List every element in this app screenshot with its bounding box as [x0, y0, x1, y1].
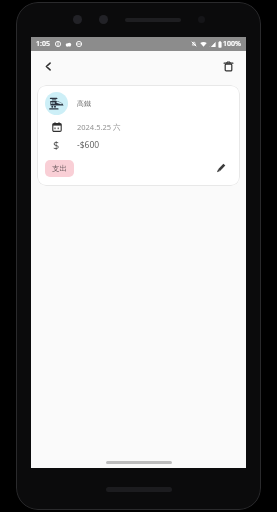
button[interactable]: Delete: [215, 53, 241, 79]
staticText: 100%: [223, 39, 241, 49]
staticText: 支出: [52, 164, 67, 173]
staticText: 2024.5.25 六: [77, 122, 121, 132]
button[interactable]: 高鐵: [37, 85, 240, 186]
staticText: 1:05: [36, 39, 50, 49]
button[interactable]: 支出: [45, 160, 74, 177]
button[interactable]: Edit: [210, 157, 232, 179]
staticText: 高鐵: [77, 99, 91, 108]
staticText: $: [53, 137, 60, 152]
button[interactable]: Back: [35, 53, 61, 79]
staticText: -$600: [77, 139, 100, 151]
